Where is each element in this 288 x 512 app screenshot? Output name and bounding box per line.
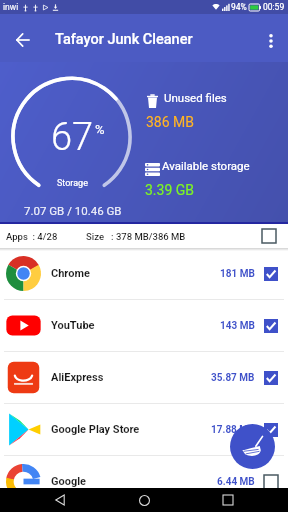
button[interactable]: Recent apps bbox=[204, 488, 252, 512]
staticText: Unused files bbox=[164, 91, 227, 104]
staticText: 3.39 GB bbox=[145, 182, 195, 198]
staticText: Google Play Store bbox=[51, 423, 140, 436]
button[interactable]: YouTube bbox=[0, 300, 288, 351]
button[interactable]: Select Google bbox=[259, 470, 283, 494]
button[interactable]: Select Chrome bbox=[259, 262, 283, 286]
staticText: 67 bbox=[51, 115, 94, 160]
staticText: Chrome bbox=[51, 267, 90, 280]
staticText: Available storage bbox=[162, 159, 250, 172]
staticText: % bbox=[95, 122, 105, 137]
button[interactable]: Google bbox=[0, 456, 288, 507]
staticText: YouTube bbox=[51, 319, 95, 332]
button[interactable]: Clean junk bbox=[230, 424, 275, 469]
button[interactable]: AliExpress bbox=[0, 352, 288, 403]
staticText: 386 MB bbox=[146, 114, 195, 130]
staticText: 94% bbox=[231, 2, 247, 12]
button[interactable]: Back bbox=[36, 488, 84, 512]
staticText: inwi bbox=[3, 2, 19, 12]
button[interactable]: Chrome bbox=[0, 248, 288, 299]
staticText: 35.87 MB bbox=[211, 372, 255, 384]
staticText: 7.07 GB / 10.46 GB bbox=[24, 204, 122, 217]
staticText: 181 MB bbox=[220, 268, 255, 280]
button[interactable]: Select YouTube bbox=[259, 314, 283, 338]
button[interactable]: More options bbox=[253, 23, 288, 59]
button[interactable]: Home bbox=[120, 488, 168, 512]
button[interactable]: Select all apps bbox=[257, 224, 281, 248]
staticText: Size : 378 MB/386 MB bbox=[86, 231, 186, 242]
staticText: 143 MB bbox=[220, 320, 255, 332]
staticText: Google bbox=[51, 475, 87, 488]
staticText: 00:59 bbox=[263, 2, 285, 12]
staticText: 6.44 MB bbox=[217, 476, 255, 488]
staticText: Storage bbox=[57, 178, 88, 189]
button[interactable]: Back bbox=[5, 22, 41, 58]
staticText: Apps : 4/28 bbox=[6, 231, 58, 242]
staticText: Tafayor Junk Cleaner bbox=[55, 31, 193, 48]
button[interactable]: Select Google Play Store bbox=[259, 418, 283, 442]
staticText: 17.88 MB bbox=[211, 424, 255, 436]
staticText: AliExpress bbox=[51, 371, 104, 384]
button[interactable]: Google Play Store bbox=[0, 404, 288, 455]
button[interactable]: Select AliExpress bbox=[259, 366, 283, 390]
